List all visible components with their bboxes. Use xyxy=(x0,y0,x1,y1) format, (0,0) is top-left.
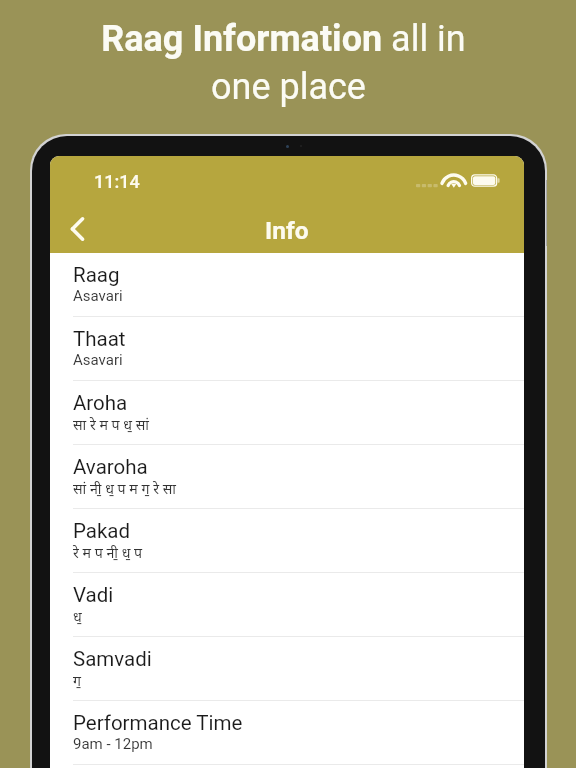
staticText: 11:14 xyxy=(94,171,140,192)
button[interactable]: Raag xyxy=(50,253,524,317)
staticText: 9am - 12pm xyxy=(73,735,153,753)
button[interactable]: Avaroha xyxy=(50,445,524,509)
button[interactable]: Aroha xyxy=(50,381,524,445)
staticText: सां नी̱ ध̱ प म ग̱ रे सा xyxy=(73,479,176,500)
staticText: Raag Information all in xyxy=(101,18,466,60)
staticText: Asavari xyxy=(73,287,123,305)
staticText: Thaat xyxy=(73,327,126,351)
staticText: Samvadi xyxy=(73,647,152,671)
staticText: one place xyxy=(211,66,366,108)
staticText: Asavari xyxy=(73,351,123,369)
button[interactable]: Back xyxy=(50,204,104,253)
staticText: सा रे म प ध̱ सां xyxy=(73,415,150,436)
staticText: Vadi xyxy=(73,583,114,607)
staticText: ध̱ xyxy=(73,607,82,626)
staticText: Performance Time xyxy=(73,711,243,735)
staticText: Info xyxy=(265,216,309,245)
staticText: Aroha xyxy=(73,391,128,415)
button[interactable]: Performance Time xyxy=(50,701,524,765)
button[interactable]: Samvadi xyxy=(50,637,524,701)
button[interactable]: Vadi xyxy=(50,573,524,637)
button[interactable]: Thaat xyxy=(50,317,524,381)
staticText: ग̱ xyxy=(73,671,81,690)
staticText: Raag xyxy=(73,263,120,287)
staticText: रे म प नी̱ ध̱ प xyxy=(73,543,143,564)
staticText: Avaroha xyxy=(73,455,148,479)
button[interactable]: Pakad xyxy=(50,509,524,573)
staticText: Pakad xyxy=(73,519,131,543)
